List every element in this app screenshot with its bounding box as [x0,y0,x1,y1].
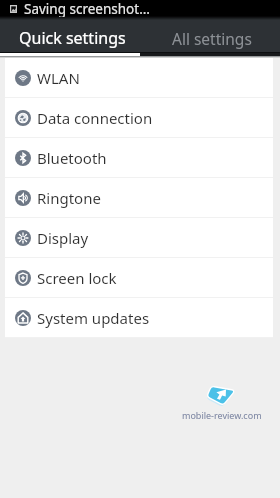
button[interactable]: Data connection [5,98,273,137]
button[interactable]: Display [5,218,273,257]
button[interactable]: Screen lock [5,258,273,297]
button[interactable]: Bluetooth [5,138,273,177]
staticText: Ringtone [37,188,101,208]
button[interactable]: All settings [140,20,280,52]
staticText: Bluetooth [37,148,107,168]
staticText: Data connection [37,108,153,128]
button[interactable]: Quick settings [0,20,140,52]
staticText: Saving screenshot… [24,0,150,17]
staticText: WLAN [37,68,80,88]
staticText: System updates [37,308,150,328]
button[interactable]: WLAN [5,58,273,97]
staticText: All settings [172,28,252,49]
staticText: Display [37,228,89,248]
staticText: mobile-review.com [182,409,262,421]
button[interactable]: System updates [5,298,273,337]
staticText: Quick settings [19,27,126,49]
button[interactable]: Ringtone [5,178,273,217]
staticText: Screen lock [37,268,117,288]
